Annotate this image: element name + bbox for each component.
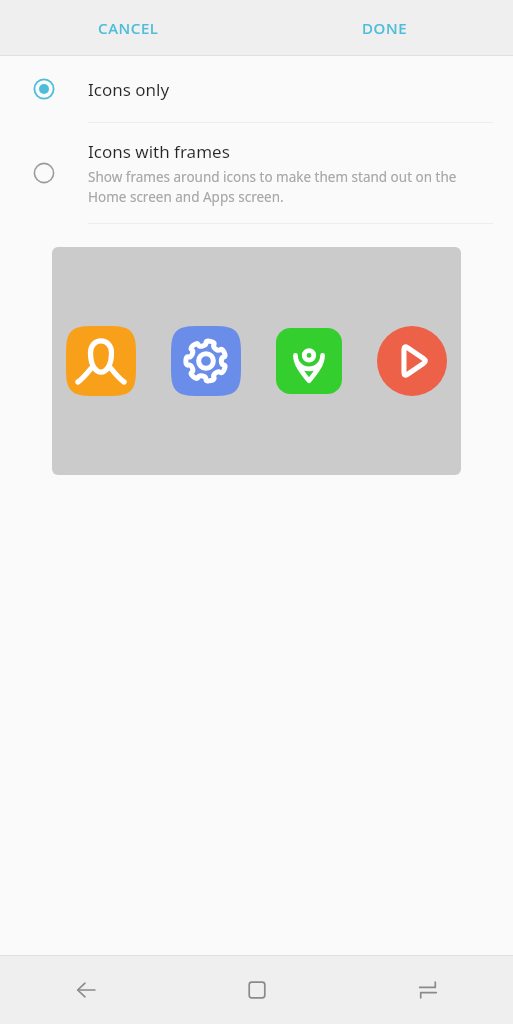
button[interactable]: Icons only [0,56,513,122]
staticText: Icons only [88,78,170,101]
button[interactable]: CANCEL [0,0,256,56]
button[interactable]: DONE [256,0,513,56]
staticText: DONE [362,18,408,38]
staticText: CANCEL [98,18,159,38]
button[interactable]: Back [0,955,171,1024]
staticText: Icons with frames [88,140,230,163]
button[interactable]: Recent apps [342,955,513,1024]
button[interactable]: Home [171,955,342,1024]
button[interactable]: Icons with frames [0,123,513,223]
staticText: Show frames around icons to make them st… [88,168,493,206]
